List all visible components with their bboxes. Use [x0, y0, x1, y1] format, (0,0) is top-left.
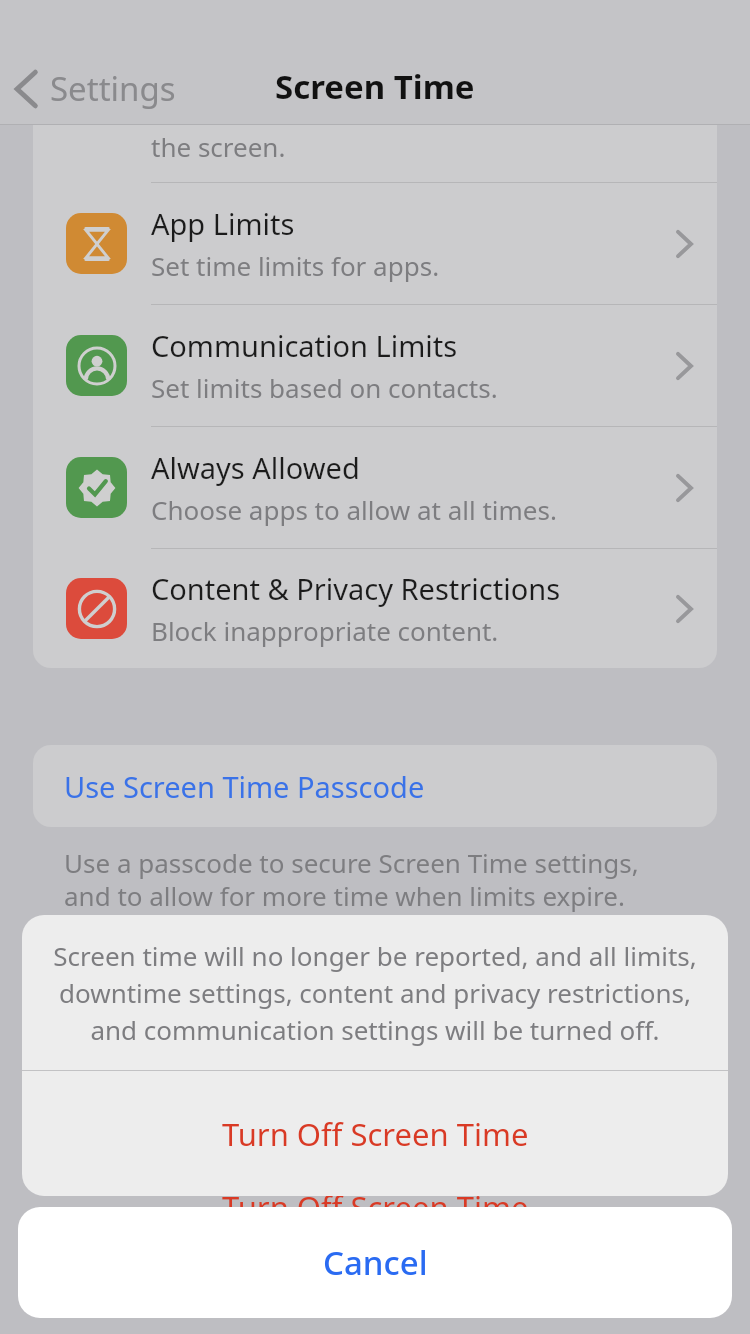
- button[interactable]: Communication Limits: [33, 305, 717, 426]
- button[interactable]: App Limits: [33, 183, 717, 304]
- staticText: Set time limits for apps.: [151, 248, 440, 283]
- staticText: Communication Limits: [151, 326, 458, 365]
- staticText: Use a passcode to secure Screen Time set…: [64, 845, 639, 914]
- button[interactable]: Cancel: [18, 1207, 732, 1318]
- staticText: Choose apps to allow at all times.: [151, 492, 557, 527]
- button[interactable]: Use Screen Time Passcode: [33, 745, 717, 827]
- staticText: Always Allowed: [151, 448, 360, 487]
- staticText: Cancel: [323, 1240, 428, 1285]
- button[interactable]: Always Allowed: [33, 427, 717, 548]
- staticText: the screen.: [151, 129, 286, 164]
- staticText: Block inappropriate content.: [151, 613, 499, 648]
- staticText: Use Screen Time Passcode: [64, 767, 425, 806]
- button[interactable]: Turn Off Screen Time: [22, 1071, 728, 1196]
- staticText: Screen Time: [275, 64, 475, 109]
- staticText: Set limits based on contacts.: [151, 370, 498, 405]
- staticText: Turn Off Screen Time: [222, 1113, 529, 1155]
- staticText: Content & Privacy Restrictions: [151, 569, 561, 608]
- button[interactable]: Settings: [14, 66, 176, 111]
- staticText: Screen time will no longer be reported, …: [53, 938, 697, 1048]
- staticText: Settings: [50, 66, 176, 111]
- staticText: App Limits: [151, 204, 295, 243]
- staticText: Turn Off Screen Time: [222, 1186, 529, 1228]
- button[interactable]: Content & Privacy Restrictions: [33, 549, 717, 668]
